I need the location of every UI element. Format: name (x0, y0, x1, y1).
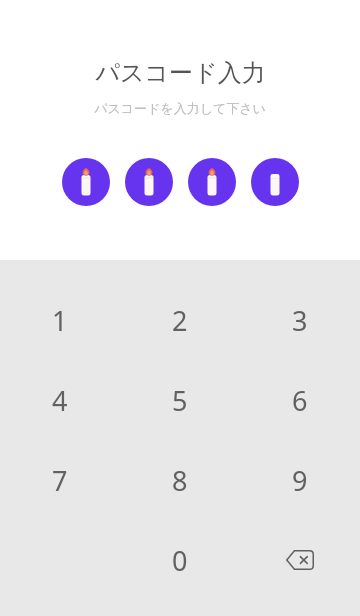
staticText: 5 (172, 382, 188, 419)
button[interactable]: 2 (120, 280, 240, 360)
button[interactable]: 0 (120, 520, 240, 600)
staticText: 2 (172, 302, 188, 339)
button[interactable]: 7 (0, 440, 120, 520)
staticText: 4 (52, 382, 68, 419)
button[interactable]: 1 (0, 280, 120, 360)
staticText: 7 (52, 462, 68, 499)
button[interactable]: 6 (240, 360, 360, 440)
staticText: 8 (172, 462, 188, 499)
staticText: 6 (292, 382, 308, 419)
staticText: パスコード入力 (95, 58, 266, 88)
button[interactable]: Passcode digit (251, 158, 299, 206)
staticText: 3 (292, 302, 308, 339)
button[interactable]: 3 (240, 280, 360, 360)
button[interactable]: Passcode digit (125, 158, 173, 206)
staticText: 1 (52, 302, 68, 339)
staticText: パスコードを入力して下さい (94, 100, 266, 116)
button[interactable]: Passcode digit (188, 158, 236, 206)
button[interactable]: 4 (0, 360, 120, 440)
button[interactable]: 8 (120, 440, 240, 520)
button[interactable]: Passcode digit (62, 158, 110, 206)
staticText: 0 (172, 542, 188, 579)
staticText: 9 (292, 462, 308, 499)
button[interactable]: 9 (240, 440, 360, 520)
button[interactable]: 5 (120, 360, 240, 440)
button[interactable]: Delete (240, 520, 360, 600)
